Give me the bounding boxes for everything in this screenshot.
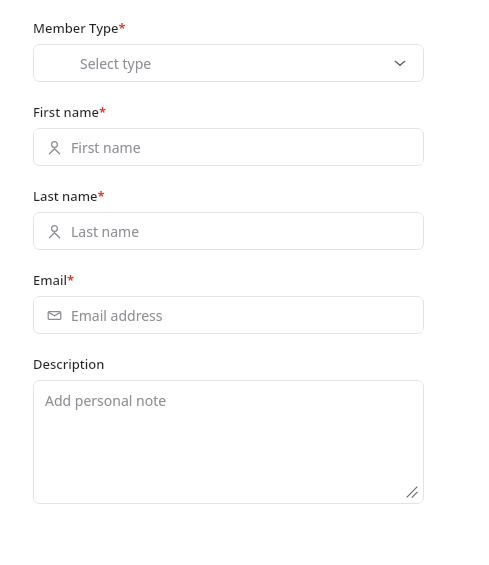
button[interactable]: Select type [33,44,424,82]
button[interactable]: Add personal note [33,380,424,504]
button[interactable]: Email address [33,296,424,334]
staticText: First name [71,138,141,157]
staticText: Last name* [33,187,105,205]
button[interactable]: Last name [33,212,424,250]
button[interactable]: Open member type list [390,53,410,73]
staticText: Last name [71,222,140,241]
button[interactable]: First name [33,128,424,166]
staticText: Member Type* [33,19,126,37]
staticText: First name* [33,103,106,121]
staticText: Add personal note [45,391,167,410]
staticText: Email address [71,306,163,325]
staticText: Description [33,355,105,373]
staticText: Select type [80,54,152,73]
staticText: Email* [33,271,75,289]
